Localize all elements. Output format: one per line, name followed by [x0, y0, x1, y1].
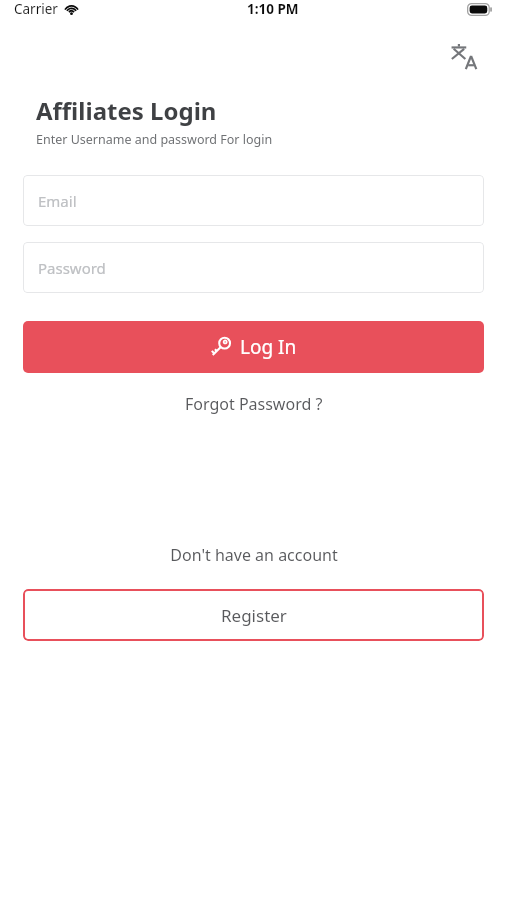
staticText: 1:10 PM [247, 0, 299, 18]
staticText: Don't have an account [170, 544, 338, 566]
button[interactable]: Forgot Password ? [175, 389, 333, 419]
staticText: Affiliates Login [36, 94, 217, 127]
staticText: Password [38, 258, 106, 278]
button[interactable]: Email [23, 175, 484, 226]
staticText: Carrier [14, 0, 58, 18]
staticText: Register [221, 604, 287, 627]
staticText: Enter Username and password For login [36, 131, 273, 148]
button[interactable]: Register [23, 589, 484, 641]
staticText: Log In [240, 334, 297, 360]
button[interactable]: Log In [23, 321, 484, 373]
button[interactable]: Password [23, 242, 484, 293]
staticText: Forgot Password ? [185, 393, 323, 415]
staticText: Email [38, 191, 77, 211]
button[interactable]: Change language [445, 37, 483, 75]
